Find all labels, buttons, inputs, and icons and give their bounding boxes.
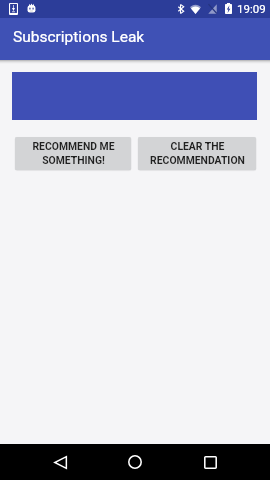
staticText: CLEAR THE RECOMMENDATION	[150, 140, 245, 167]
button[interactable]: Back	[42, 444, 78, 480]
staticText: Subscriptions Leak	[13, 28, 145, 46]
button[interactable]: Recents	[192, 444, 228, 480]
staticText: RECOMMEND ME SOMETHING!	[32, 140, 115, 167]
button[interactable]: CLEAR THE RECOMMENDATION	[138, 137, 256, 170]
staticText: 19:09	[237, 2, 266, 15]
button[interactable]: Home	[117, 444, 153, 480]
button[interactable]: RECOMMEND ME SOMETHING!	[15, 137, 131, 170]
